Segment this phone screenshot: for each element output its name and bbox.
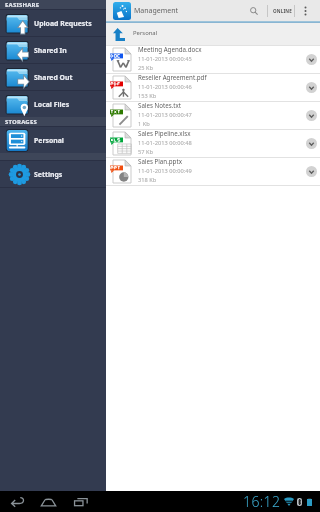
- staticText: STORAGES: [5, 118, 37, 126]
- staticText: Shared Out: [34, 73, 73, 82]
- staticText: Sales Notes.txt: [138, 101, 182, 109]
- staticText: 16:12: [243, 492, 281, 511]
- staticText: 11-01-2013 00:00:49: [138, 167, 192, 175]
- button[interactable]: Row options: [305, 102, 318, 129]
- staticText: Personal: [133, 29, 158, 37]
- button[interactable]: Row options: [305, 158, 318, 185]
- button[interactable]: Local Files: [0, 91, 106, 117]
- staticText: 153 Kb: [138, 92, 157, 100]
- button[interactable]: Shared Out: [0, 64, 106, 90]
- button[interactable]: Personal: [0, 127, 106, 153]
- button[interactable]: Row options: [305, 130, 318, 157]
- button[interactable]: Back: [6, 491, 29, 512]
- staticText: Management: [134, 6, 179, 16]
- button[interactable]: ONLINE: [273, 8, 292, 14]
- button[interactable]: App icon: [113, 2, 131, 20]
- staticText: Local Files: [34, 100, 70, 109]
- staticText: 11-01-2013 00:00:48: [138, 139, 192, 147]
- button[interactable]: Sales Plan.pptx: [106, 158, 320, 185]
- staticText: EASISHARE: [5, 1, 40, 9]
- button[interactable]: Reseller Agreement.pdf: [106, 74, 320, 101]
- button[interactable]: More options: [299, 0, 312, 21]
- button[interactable]: Row options: [305, 46, 318, 73]
- button[interactable]: Row options: [305, 74, 318, 101]
- button[interactable]: Upload Requests: [0, 10, 106, 36]
- staticText: Sales Plan.pptx: [138, 157, 182, 165]
- staticText: Shared In: [34, 46, 67, 55]
- button[interactable]: Recent apps: [69, 491, 92, 512]
- button[interactable]: Sales Pipeline.xlsx: [106, 130, 320, 157]
- button[interactable]: Meeting Agenda.docx: [106, 46, 320, 73]
- staticText: Meeting Agenda.docx: [138, 45, 202, 53]
- button[interactable]: Search: [236, 0, 258, 21]
- staticText: 11-01-2013 00:00:46: [138, 83, 192, 91]
- staticText: 11-01-2013 00:00:47: [138, 111, 192, 119]
- button[interactable]: Home: [37, 491, 60, 512]
- staticText: 25 Kb: [138, 64, 154, 72]
- staticText: Settings: [34, 170, 63, 179]
- staticText: Personal: [34, 136, 64, 145]
- staticText: Upload Requests: [34, 19, 92, 28]
- staticText: 11-01-2013 00:00:45: [138, 55, 192, 63]
- button[interactable]: Sales Notes.txt: [106, 102, 320, 129]
- staticText: Sales Pipeline.xlsx: [138, 129, 191, 137]
- button[interactable]: Settings: [0, 161, 106, 187]
- staticText: 318 Kb: [138, 176, 157, 184]
- staticText: 57 Kb: [138, 148, 154, 156]
- staticText: 1 Kb: [138, 120, 150, 128]
- button[interactable]: Shared In: [0, 37, 106, 63]
- staticText: Reseller Agreement.pdf: [138, 73, 207, 81]
- button[interactable]: Personal: [106, 23, 320, 45]
